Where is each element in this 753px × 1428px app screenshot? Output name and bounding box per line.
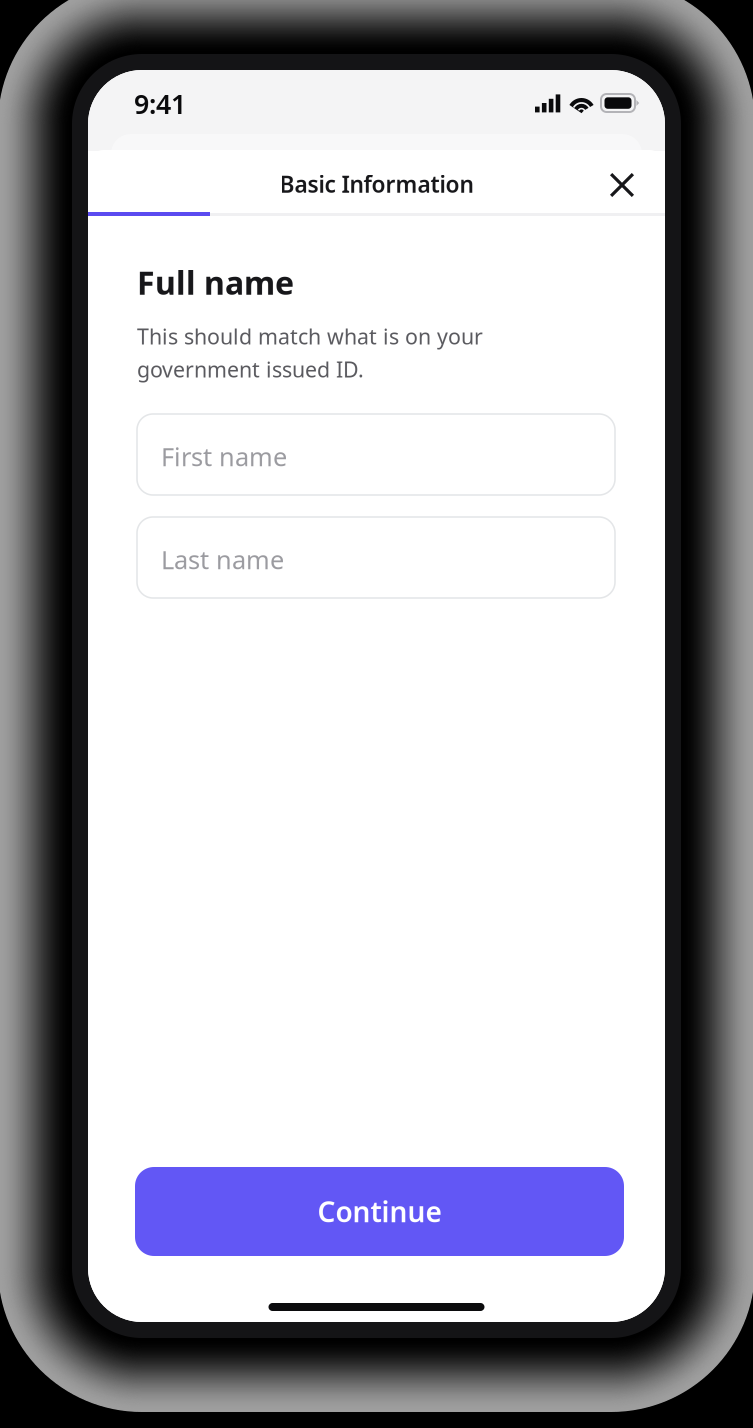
button[interactable]: Basic Information bbox=[246, 161, 506, 207]
staticText: Continue bbox=[317, 1193, 441, 1230]
staticText: Last name bbox=[161, 543, 284, 576]
staticText: First name bbox=[161, 440, 287, 473]
staticText: 9:41 bbox=[134, 86, 186, 121]
button[interactable]: First name bbox=[137, 414, 615, 495]
button[interactable]: Close bbox=[593, 156, 651, 214]
staticText: Full name bbox=[137, 261, 294, 303]
staticText: This should match what is on your bbox=[137, 322, 483, 350]
staticText: Basic Information bbox=[279, 169, 473, 199]
button[interactable]: Continue bbox=[135, 1167, 624, 1256]
button[interactable]: Last name bbox=[137, 517, 615, 598]
staticText: government issued ID. bbox=[137, 355, 364, 383]
